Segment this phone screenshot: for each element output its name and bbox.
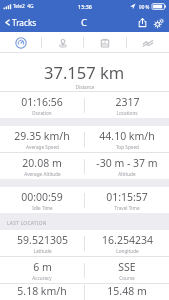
staticText: 01:15:57 bbox=[106, 190, 148, 204]
staticText: Altitude bbox=[118, 171, 136, 177]
staticText: Tracks bbox=[12, 17, 37, 28]
staticText: Travel Time bbox=[114, 205, 140, 211]
staticText: Idle Time bbox=[32, 205, 53, 211]
staticText: -30 m - 37 m bbox=[96, 156, 158, 170]
staticText: 01:16:56 bbox=[21, 95, 63, 109]
button[interactable]: Statistics bbox=[84, 32, 126, 53]
button[interactable]: Summary bbox=[0, 32, 41, 53]
staticText: 2317 bbox=[115, 95, 140, 109]
button[interactable]: Charts bbox=[127, 32, 169, 53]
staticText: Accuracy bbox=[32, 275, 52, 281]
staticText: C bbox=[81, 16, 88, 29]
staticText: Latitude bbox=[33, 248, 52, 254]
staticText: 37.157 km bbox=[44, 61, 125, 83]
staticText: Top Speed bbox=[116, 144, 139, 150]
staticText: 44.10 km/h bbox=[99, 129, 155, 143]
staticText: 00:00:59 bbox=[21, 190, 63, 204]
staticText: Average Speed bbox=[26, 144, 59, 150]
staticText: 16.254234 bbox=[102, 233, 153, 247]
staticText: Locations bbox=[116, 110, 138, 116]
button[interactable]: 37.157 km bbox=[0, 53, 169, 91]
staticText: 20.08 m bbox=[22, 156, 62, 170]
staticText: Average Altitude bbox=[24, 171, 61, 177]
staticText: SSE bbox=[118, 260, 136, 274]
staticText: 15.48 m bbox=[107, 284, 147, 298]
staticText: Tele2 4G bbox=[13, 3, 34, 10]
staticText: LAST LOCATION bbox=[7, 220, 47, 227]
button[interactable]: 6 m bbox=[0, 257, 169, 283]
button[interactable]: Settings bbox=[154, 13, 164, 32]
button[interactable]: 29.35 km/h bbox=[0, 126, 169, 152]
staticText: 59.521305 bbox=[17, 233, 68, 247]
staticText: Duration bbox=[32, 110, 52, 116]
button[interactable]: Tracks bbox=[4, 13, 37, 32]
button[interactable]: 00:00:59 bbox=[0, 187, 169, 213]
staticText: Longitude bbox=[116, 248, 139, 254]
staticText: Course bbox=[119, 275, 135, 281]
button[interactable]: 20.08 m bbox=[0, 153, 169, 179]
staticText: 29.35 km/h bbox=[14, 129, 70, 143]
button[interactable]: 5.18 km/h bbox=[0, 284, 169, 300]
staticText: 90 % bbox=[139, 4, 150, 10]
staticText: 5.18 km/h bbox=[17, 284, 67, 298]
staticText: Distance bbox=[75, 84, 95, 90]
button[interactable]: 01:16:56 bbox=[0, 92, 169, 118]
staticText: 13:36 bbox=[78, 3, 92, 10]
button[interactable]: Share bbox=[138, 13, 147, 32]
staticText: 6 m bbox=[33, 260, 52, 274]
button[interactable]: Map bbox=[42, 32, 83, 53]
button[interactable]: 59.521305 bbox=[0, 230, 169, 256]
